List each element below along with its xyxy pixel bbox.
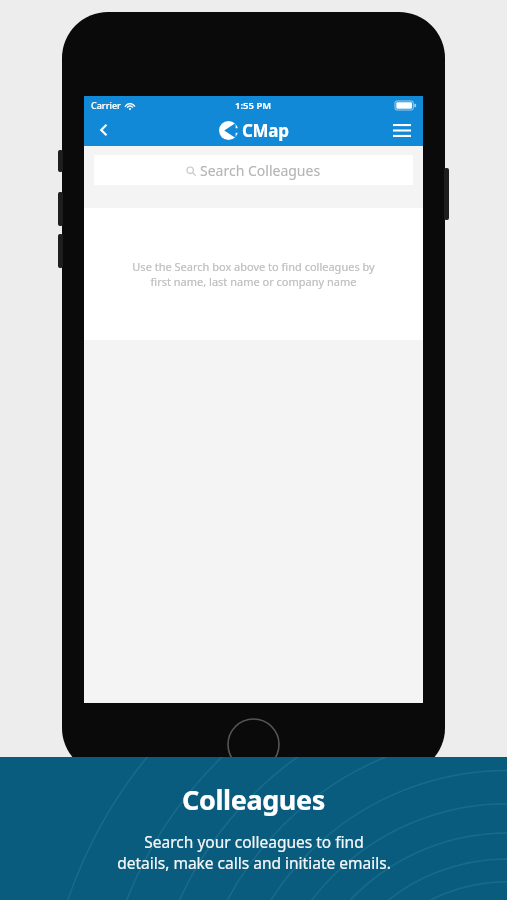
staticText: CMap — [242, 119, 289, 142]
staticText: Search your colleagues to find details, … — [117, 831, 391, 874]
button[interactable]: Back — [84, 114, 124, 146]
button[interactable]: Menu — [381, 114, 423, 146]
button[interactable]: Search Colleagues — [94, 155, 413, 185]
staticText: 1:55 PM — [235, 99, 272, 112]
button[interactable]: Home — [227, 718, 280, 771]
staticText: Carrier — [91, 99, 121, 111]
staticText: Colleagues — [182, 781, 325, 818]
staticText: Use the Search box above to find colleag… — [132, 259, 375, 289]
staticText: Search Colleagues — [200, 161, 321, 180]
